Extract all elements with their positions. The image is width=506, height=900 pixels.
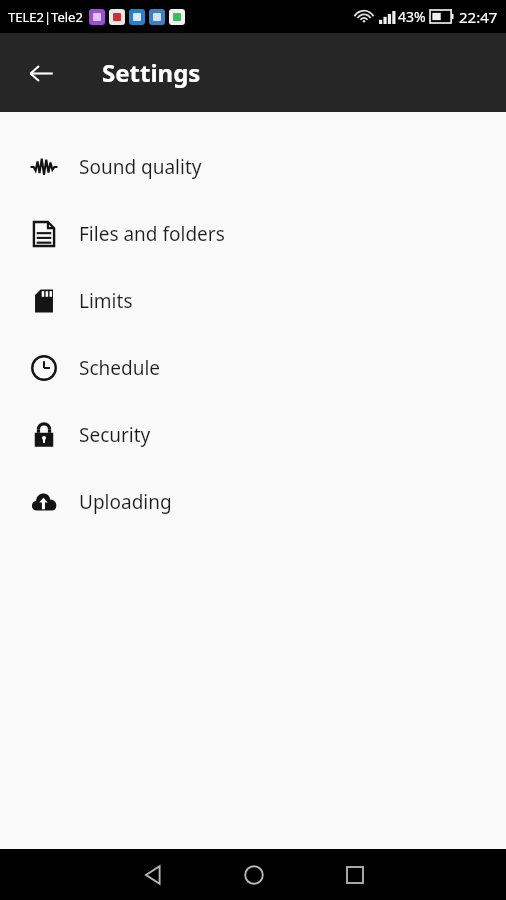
staticText: Files and folders: [79, 221, 225, 247]
button[interactable]: Files and folders: [0, 200, 506, 267]
staticText: Security: [79, 422, 151, 448]
staticText: Sound quality: [79, 154, 202, 180]
button[interactable]: Back: [19, 51, 63, 95]
staticText: Schedule: [79, 355, 161, 381]
button[interactable]: Security: [0, 401, 506, 468]
button[interactable]: Home: [203, 849, 304, 900]
staticText: 22:47: [459, 7, 498, 27]
button[interactable]: Recent apps: [304, 849, 405, 900]
staticText: Limits: [79, 288, 133, 314]
button[interactable]: Back: [102, 849, 203, 900]
button[interactable]: Sound quality: [0, 133, 506, 200]
button[interactable]: Limits: [0, 267, 506, 334]
button[interactable]: Uploading: [0, 468, 506, 535]
staticText: TELE2|Tele2: [8, 8, 83, 26]
staticText: Uploading: [79, 489, 172, 515]
button[interactable]: Schedule: [0, 334, 506, 401]
staticText: 43%: [398, 7, 426, 26]
staticText: Settings: [102, 56, 201, 89]
